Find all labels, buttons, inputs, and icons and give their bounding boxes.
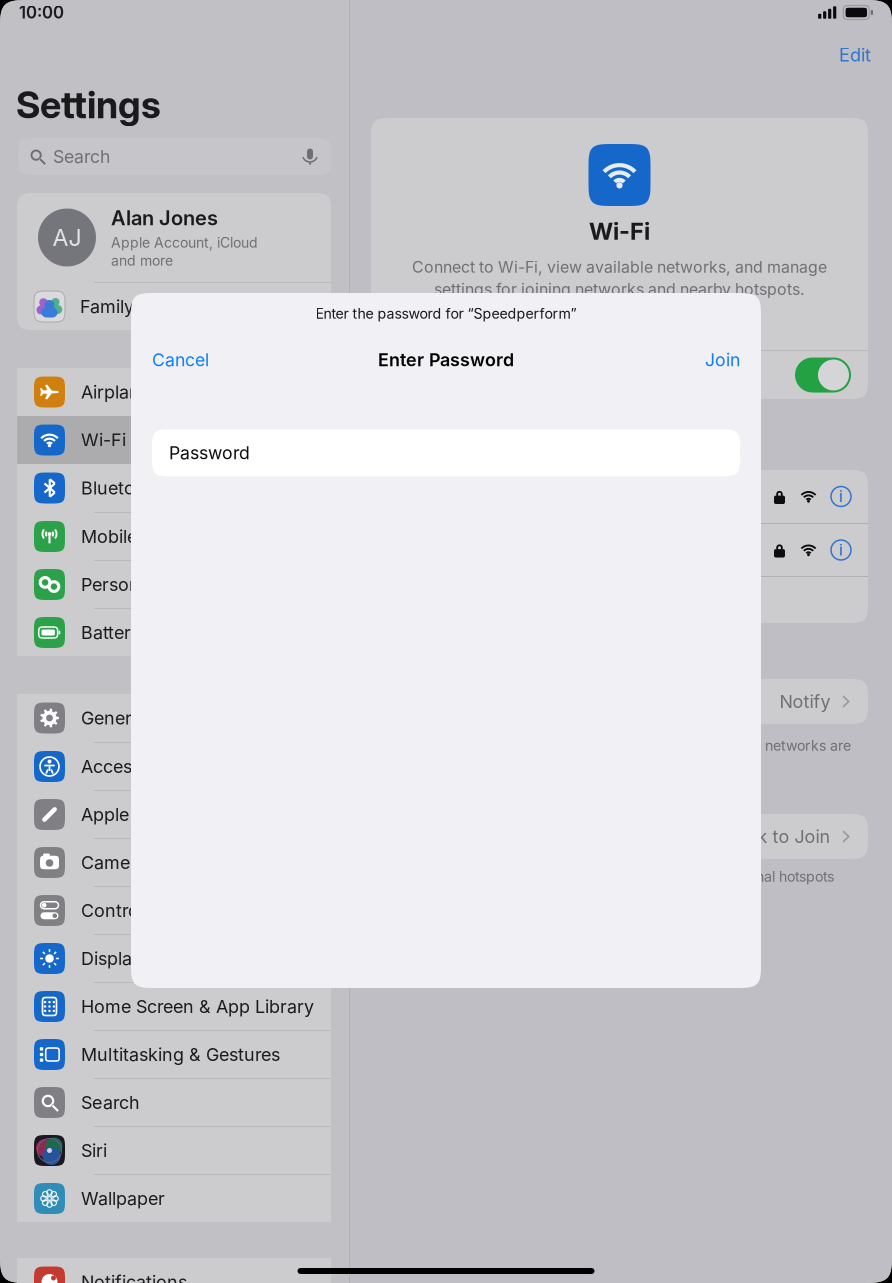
button[interactable]: Cancel (147, 342, 214, 377)
button[interactable]: Display & Brightness (17, 935, 331, 982)
staticText: Siri (81, 1140, 107, 1161)
button[interactable]: Auto-Join Hotspot (371, 814, 868, 859)
button[interactable]: Bluetooth (17, 464, 331, 512)
staticText: Battery (81, 622, 141, 643)
button[interactable]: Accessibility (17, 743, 331, 790)
staticText: Bluetooth (81, 477, 163, 499)
button[interactable]: Search (17, 1079, 331, 1126)
button[interactable]: AJ (17, 193, 331, 282)
button[interactable]: Wi-Fi (17, 416, 331, 464)
staticText: 10:00 (19, 2, 64, 23)
button[interactable]: Notifications (17, 1258, 331, 1283)
staticText: Alan Jones (111, 206, 218, 230)
staticText: settings for joining networks and nearby… (434, 280, 805, 299)
staticText: Search (81, 1092, 140, 1113)
button[interactable]: Family (17, 283, 331, 330)
staticText: Camera (81, 852, 147, 873)
staticText: and more (111, 252, 173, 269)
button[interactable]: Control Centre (17, 887, 331, 934)
staticText: Personal Hotspot (81, 574, 226, 595)
button[interactable]: Siri (17, 1127, 331, 1174)
button[interactable]: Ask to Join Networks (371, 679, 868, 724)
staticText: Ask to Join (736, 826, 830, 847)
staticText: Home Screen & App Library (81, 996, 314, 1017)
staticText: Known networks will be joined automatica… (388, 737, 851, 754)
button[interactable]: Other… (371, 577, 868, 623)
button[interactable]: Wallpaper (17, 1175, 331, 1222)
button[interactable]: General (17, 694, 331, 742)
button[interactable]: BT-HOTSPOT-9K (371, 524, 868, 576)
staticText: Multitasking & Gestures (81, 1044, 280, 1065)
staticText: Wi-Fi (589, 217, 650, 245)
staticText: Cancel (152, 349, 209, 370)
staticText: General (81, 707, 146, 729)
staticText: Family (80, 296, 134, 317)
button[interactable]: Camera (17, 839, 331, 886)
staticText: Notifications (81, 1271, 187, 1283)
button[interactable]: Battery (17, 609, 331, 656)
staticText: Wallpaper (81, 1188, 165, 1209)
button[interactable]: Airplane Mode (17, 368, 331, 416)
staticText: AJ (52, 223, 81, 252)
staticText: Password (169, 442, 250, 463)
button[interactable]: Mobile Service (17, 513, 331, 560)
button[interactable]: More info about BT-HOTSPOT-9K (825, 534, 857, 566)
staticText: Apple Pencil (81, 804, 184, 825)
button[interactable]: Edit (829, 36, 881, 74)
button[interactable]: Speedperform (371, 470, 868, 523)
staticText: Accessibility (81, 756, 184, 777)
button[interactable]: Search (18, 138, 331, 175)
staticText: Enter Password (378, 349, 514, 370)
button[interactable]: Join (700, 342, 745, 377)
staticText: Search (53, 146, 110, 167)
staticText: Join (705, 349, 740, 370)
staticText: Mobile Service (81, 526, 204, 547)
button[interactable]: Personal Hotspot (17, 561, 331, 608)
staticText: Edit (839, 44, 871, 66)
button[interactable]: Wi-Fi, on (795, 357, 851, 392)
button[interactable]: Multitasking & Gestures (17, 1031, 331, 1078)
staticText: Airplane Mode (81, 381, 203, 403)
staticText: i (839, 541, 843, 559)
staticText: i (839, 487, 843, 506)
staticText: Notify (779, 691, 830, 712)
staticText: Settings (16, 82, 161, 127)
button[interactable]: Apple Pencil (17, 791, 331, 838)
staticText: Wi-Fi (389, 364, 434, 386)
staticText: Enter the password for “Speedperform” (315, 305, 576, 322)
staticText: Wi-Fi (81, 429, 126, 451)
staticText: Control Centre (81, 900, 204, 921)
staticText: Allow this device to automatically disco… (388, 868, 834, 885)
staticText: Connect to Wi-Fi, view available network… (412, 257, 827, 277)
button[interactable]: Home Screen & App Library (17, 983, 331, 1030)
button[interactable]: More info about Speedperform (825, 480, 857, 512)
staticText: Apple Account, iCloud (111, 234, 258, 251)
staticText: Display & Brightness (81, 948, 254, 969)
